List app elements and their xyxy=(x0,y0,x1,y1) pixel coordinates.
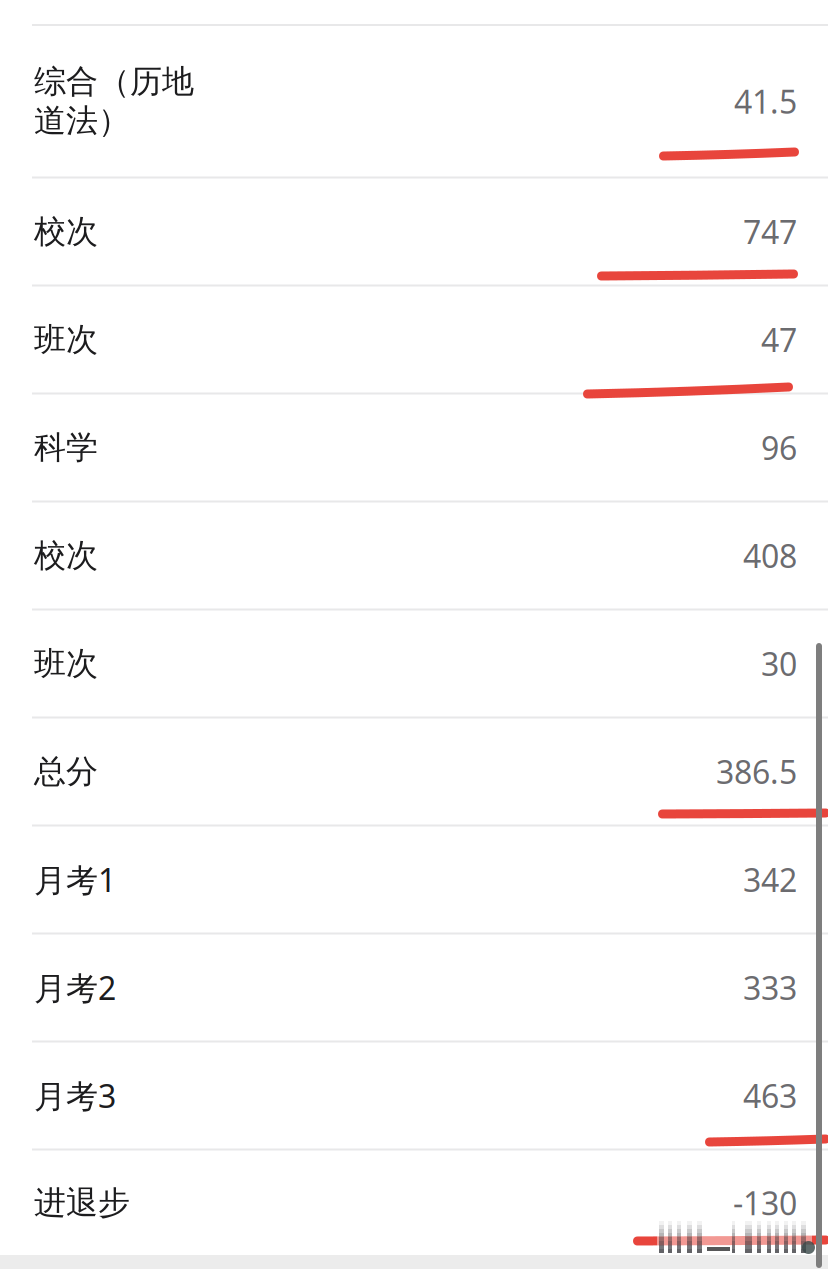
button[interactable]: 校次 xyxy=(0,502,828,608)
staticText: 342 xyxy=(743,858,797,901)
staticText: 41.5 xyxy=(734,80,797,122)
button[interactable]: 进退步 xyxy=(0,1150,828,1255)
staticText: 班次 xyxy=(34,644,98,683)
staticText: 30 xyxy=(761,642,797,685)
staticText: 综合（历地 道法） xyxy=(34,62,194,140)
button[interactable]: 综合（历地 道法） xyxy=(0,26,828,176)
staticText: 月考1 xyxy=(34,858,116,901)
button[interactable]: 月考2 xyxy=(0,934,828,1040)
staticText: 校次 xyxy=(34,536,98,575)
button[interactable]: 班次 xyxy=(0,610,828,716)
button[interactable]: 科学 xyxy=(0,394,828,500)
staticText: 408 xyxy=(743,534,797,577)
button[interactable]: 月考1 xyxy=(0,826,828,932)
staticText: 月考2 xyxy=(34,966,116,1009)
staticText: 333 xyxy=(743,966,797,1009)
staticText: 进退步 xyxy=(34,1183,130,1222)
staticText: 386.5 xyxy=(716,750,797,793)
staticText: 463 xyxy=(743,1074,797,1117)
staticText: -130 xyxy=(733,1181,797,1224)
button[interactable]: 校次 xyxy=(0,178,828,284)
staticText: 47 xyxy=(761,318,797,361)
button[interactable]: 月考3 xyxy=(0,1042,828,1148)
staticText: 月考3 xyxy=(34,1074,116,1117)
staticText: 96 xyxy=(761,426,797,469)
staticText: 747 xyxy=(743,210,797,253)
staticText: 科学 xyxy=(34,428,98,467)
staticText: 总分 xyxy=(34,752,98,791)
staticText: 校次 xyxy=(34,212,98,251)
button[interactable]: 班次 xyxy=(0,286,828,392)
button[interactable]: 总分 xyxy=(0,718,828,824)
staticText: 班次 xyxy=(34,320,98,359)
